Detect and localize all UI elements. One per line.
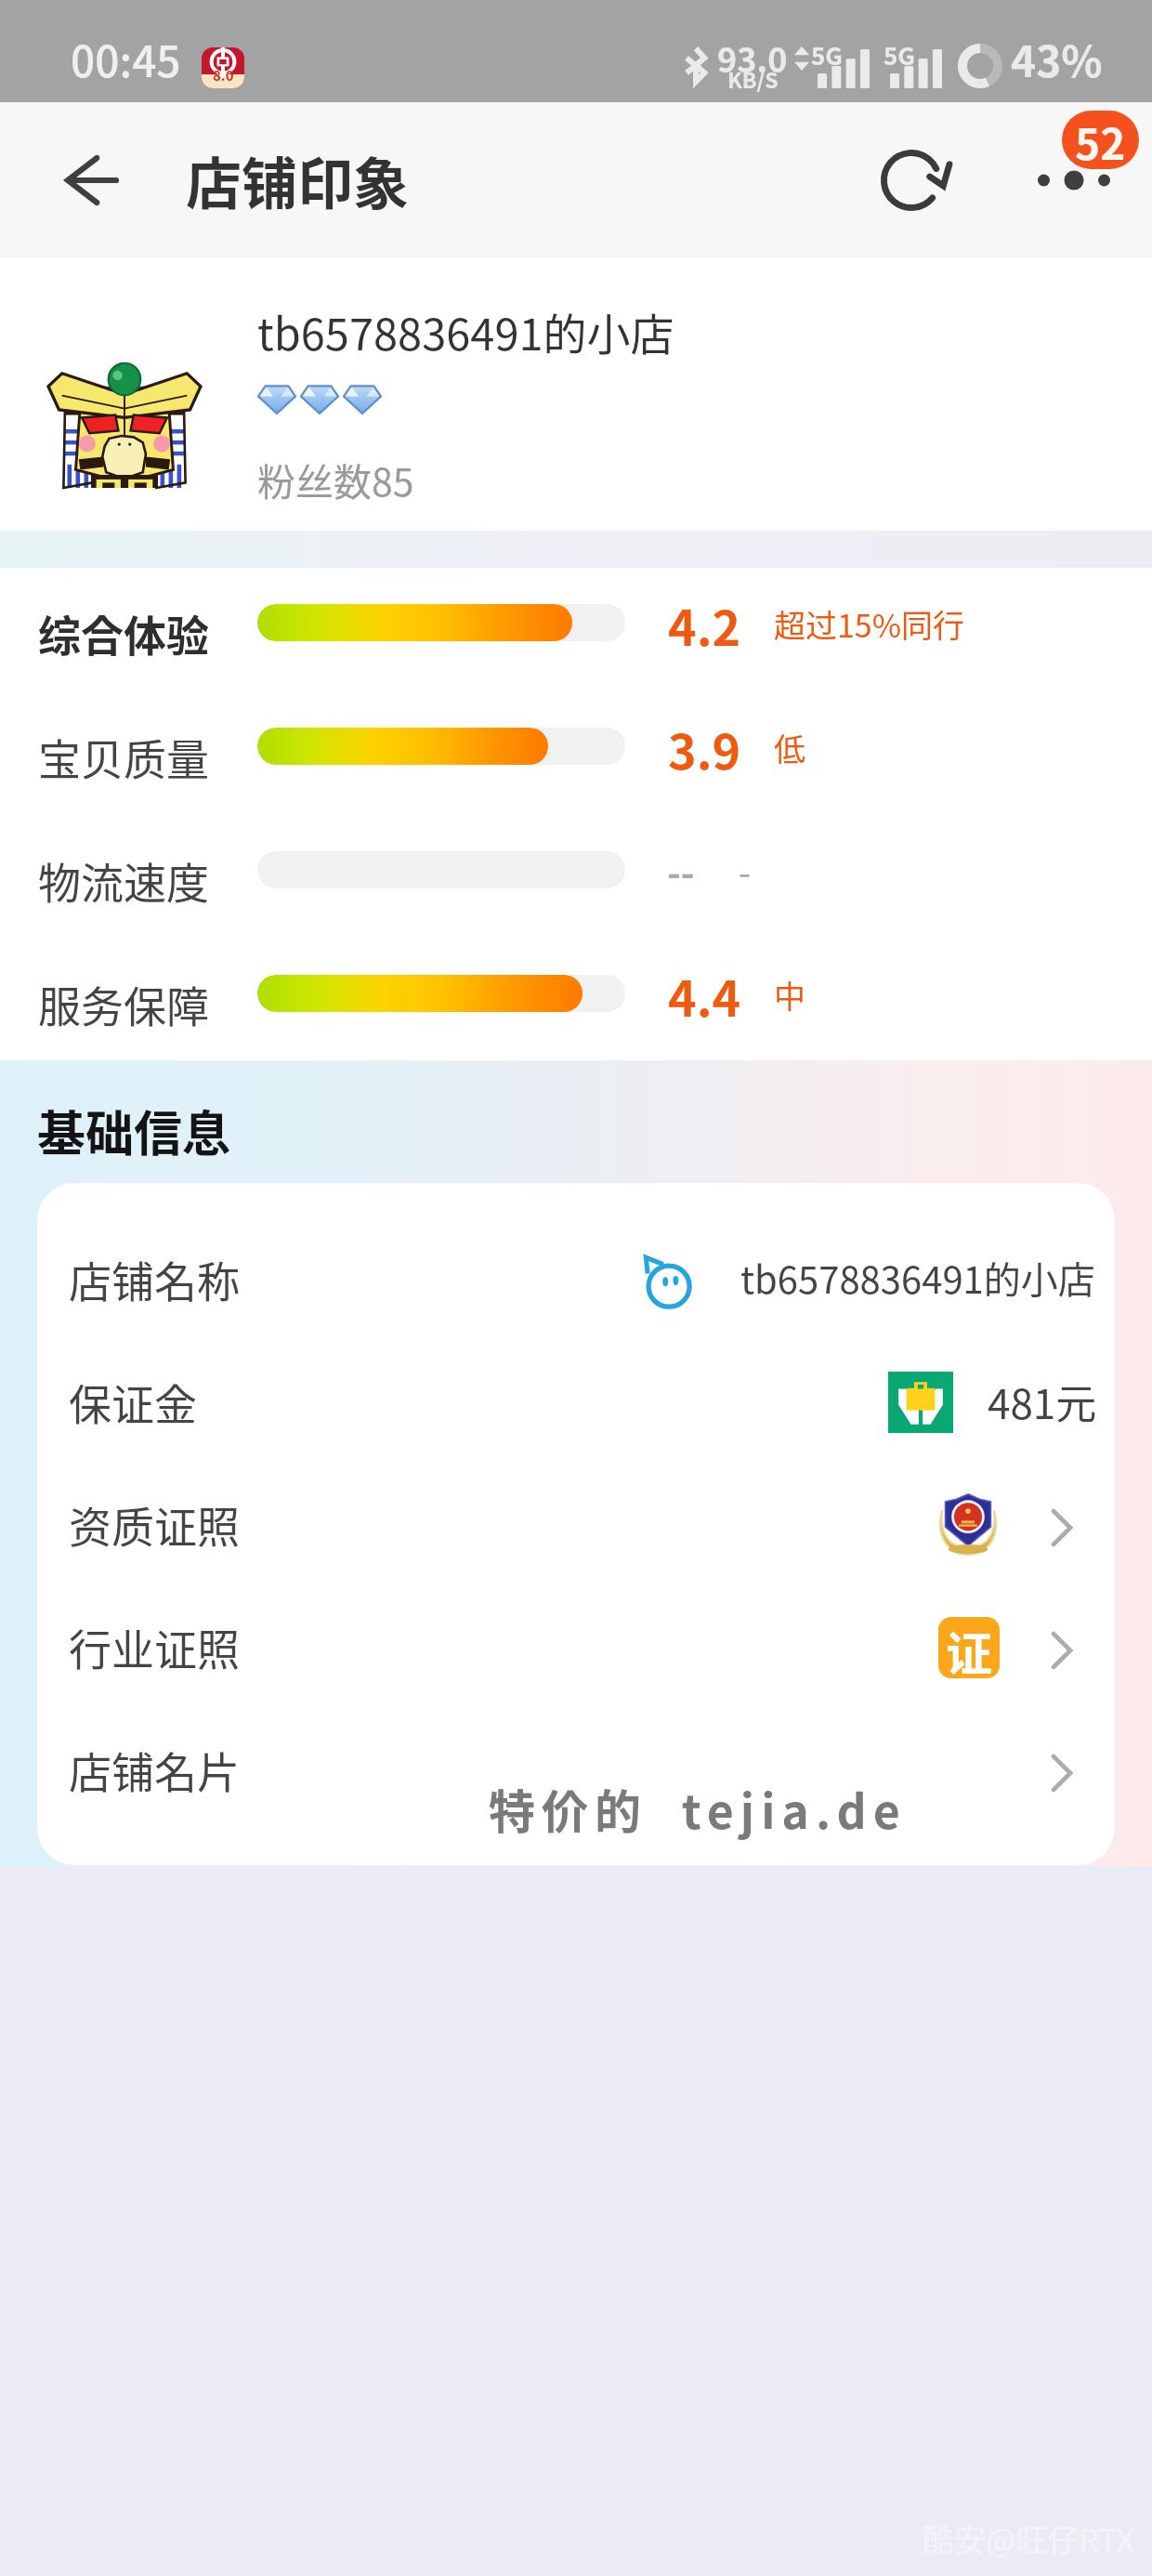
staticText: 证	[946, 1617, 992, 1678]
staticText: tb6578836491的小店	[257, 299, 674, 362]
staticText: tb6578836491的小店	[740, 1251, 1115, 1305]
button[interactable]	[37, 1343, 1115, 1465]
staticText: 特价的 tejia.de	[489, 1775, 907, 1842]
staticText: 行业证照	[69, 1616, 240, 1678]
staticText: 保证金	[69, 1371, 197, 1433]
button[interactable]	[37, 1711, 1115, 1833]
staticText: 超过15%同行	[774, 601, 965, 647]
staticText: 5G	[811, 37, 843, 72]
staticText: --	[667, 844, 695, 898]
staticText: 低	[774, 725, 805, 770]
staticText: 资质证照	[69, 1493, 240, 1556]
staticText: 8.0	[213, 65, 234, 85]
button[interactable]	[37, 1220, 1115, 1343]
staticText: 5G	[884, 37, 915, 72]
staticText: -	[739, 845, 752, 896]
staticText: 物流速度	[38, 849, 209, 912]
staticText: 粉丝数85	[257, 452, 414, 506]
button[interactable]: More options	[1022, 128, 1126, 232]
staticText: 52	[1075, 111, 1126, 169]
staticText: 服务保障	[38, 973, 209, 1035]
staticText: 481元	[988, 1372, 1097, 1431]
staticText: 店铺印象	[186, 139, 409, 220]
staticText: 43%	[1011, 28, 1103, 90]
staticText: 3.9	[668, 714, 741, 783]
button[interactable]: tb6578836491的小店	[0, 257, 1152, 531]
staticText: KB/S	[727, 63, 779, 94]
button[interactable]: Refresh	[864, 129, 966, 231]
staticText: 宝贝质量	[38, 726, 209, 788]
staticText: 酷安@旺仔RTX	[923, 2516, 1135, 2561]
staticText: 中	[774, 972, 805, 1018]
staticText: 4.4	[668, 961, 741, 1031]
staticText: 93.0	[717, 33, 788, 82]
staticText: 基础信息	[37, 1096, 231, 1165]
staticText: 4.2	[668, 590, 741, 660]
staticText: 店铺名片	[69, 1739, 240, 1801]
staticText: 综合体验	[38, 602, 209, 664]
button[interactable]: Back	[40, 128, 144, 232]
button[interactable]	[37, 1465, 1115, 1588]
staticText: 00:45	[71, 28, 181, 90]
button[interactable]	[37, 1588, 1115, 1711]
staticText: 店铺名称	[69, 1248, 240, 1310]
